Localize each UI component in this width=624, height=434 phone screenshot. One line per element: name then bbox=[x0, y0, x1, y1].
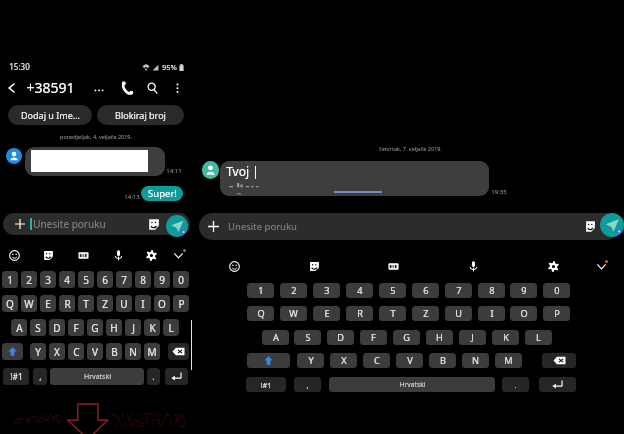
button[interactable]: 5 bbox=[379, 283, 406, 298]
button[interactable]: R bbox=[346, 306, 373, 321]
button[interactable]: tool0 bbox=[9, 250, 20, 261]
button[interactable]: C bbox=[68, 343, 84, 360]
button[interactable]: I bbox=[478, 306, 505, 321]
button[interactable]: Hrvatski bbox=[329, 377, 495, 392]
button[interactable]: H bbox=[426, 330, 453, 345]
button[interactable]: Enter bbox=[165, 368, 188, 385]
button[interactable]: 5 bbox=[78, 271, 94, 288]
button[interactable]: 6 bbox=[97, 271, 113, 288]
button[interactable]: E bbox=[40, 295, 56, 312]
button[interactable]: Search bbox=[144, 78, 161, 98]
button[interactable]: 4 bbox=[346, 283, 373, 298]
button[interactable]: Z bbox=[412, 306, 439, 321]
button[interactable]: Add attachment bbox=[207, 220, 220, 233]
button[interactable]: 2 bbox=[21, 271, 37, 288]
button[interactable]: Q bbox=[247, 306, 274, 321]
button[interactable]: Add attachment bbox=[14, 218, 26, 230]
button[interactable]: G bbox=[87, 319, 103, 336]
button[interactable]: B bbox=[106, 343, 122, 360]
button[interactable]: C bbox=[363, 353, 390, 368]
button[interactable]: , bbox=[294, 377, 321, 392]
button[interactable]: 6 bbox=[412, 283, 439, 298]
button[interactable]: N bbox=[125, 343, 141, 360]
button[interactable]: D bbox=[327, 330, 354, 345]
button[interactable]: !#1 bbox=[246, 377, 286, 392]
button[interactable]: G bbox=[393, 330, 420, 345]
button[interactable]: O bbox=[510, 306, 537, 321]
button[interactable]: Tvoj | bbox=[220, 161, 489, 196]
button[interactable]: W bbox=[280, 306, 307, 321]
button[interactable]: Y bbox=[297, 353, 324, 368]
button[interactable]: W bbox=[21, 295, 37, 312]
button[interactable]: 1 bbox=[2, 271, 18, 288]
button[interactable]: U bbox=[445, 306, 472, 321]
button[interactable]: 4 bbox=[59, 271, 75, 288]
button[interactable]: Shift bbox=[2, 343, 23, 360]
button[interactable]: 9 bbox=[510, 283, 537, 298]
button[interactable]: 7 bbox=[445, 283, 472, 298]
button[interactable]: 8 bbox=[135, 271, 151, 288]
button[interactable]: S bbox=[294, 330, 321, 345]
button[interactable]: Stickers bbox=[585, 220, 596, 233]
button[interactable]: J bbox=[459, 330, 486, 345]
button[interactable]: Stickers bbox=[148, 218, 160, 231]
button[interactable]: Backspace bbox=[542, 353, 576, 368]
button[interactable]: tool4 bbox=[146, 250, 157, 261]
button[interactable]: Shift bbox=[247, 353, 290, 368]
button[interactable]: K bbox=[144, 319, 160, 336]
button[interactable]: T bbox=[78, 295, 94, 312]
button[interactable]: . bbox=[502, 377, 529, 392]
button[interactable]: L bbox=[525, 330, 552, 345]
button[interactable]: rtool5 bbox=[596, 261, 607, 272]
button[interactable]: Enter bbox=[539, 377, 576, 392]
button[interactable]: 3 bbox=[313, 283, 340, 298]
button[interactable]: tool2 bbox=[78, 250, 89, 261]
button[interactable]: Send bbox=[166, 215, 188, 237]
button[interactable]: Y bbox=[30, 343, 46, 360]
button[interactable]: Z bbox=[97, 295, 113, 312]
button[interactable]: J bbox=[125, 319, 141, 336]
button[interactable]: 2 bbox=[280, 283, 307, 298]
button[interactable]: rtool1 bbox=[309, 261, 320, 272]
button[interactable]: Hrvatski bbox=[50, 368, 144, 385]
button[interactable]: H bbox=[106, 319, 122, 336]
button[interactable]: V bbox=[396, 353, 423, 368]
button[interactable]: R bbox=[59, 295, 75, 312]
button[interactable]: Q bbox=[2, 295, 18, 312]
button[interactable]: 0 bbox=[543, 283, 570, 298]
button[interactable]: M bbox=[144, 343, 160, 360]
button[interactable]: . bbox=[147, 368, 160, 385]
button[interactable]: Super! bbox=[141, 186, 183, 201]
button[interactable]: tool3 bbox=[113, 250, 124, 261]
button[interactable]: 7 bbox=[116, 271, 132, 288]
button[interactable]: rtool3 bbox=[468, 261, 479, 272]
button[interactable]: S bbox=[30, 319, 46, 336]
button[interactable]: M bbox=[495, 353, 522, 368]
button[interactable]: K bbox=[492, 330, 519, 345]
button[interactable]: A bbox=[11, 319, 27, 336]
button[interactable]: E bbox=[313, 306, 340, 321]
button[interactable]: N bbox=[462, 353, 489, 368]
button[interactable]: rtool0 bbox=[229, 261, 240, 272]
button[interactable]: 1 bbox=[247, 283, 274, 298]
button[interactable]: T bbox=[379, 306, 406, 321]
button[interactable]: 0 bbox=[173, 271, 189, 288]
button[interactable]: F bbox=[360, 330, 387, 345]
button[interactable]: tool5 bbox=[173, 250, 184, 261]
button[interactable]: Back bbox=[2, 78, 22, 98]
button[interactable]: P bbox=[543, 306, 570, 321]
button[interactable]: 9 bbox=[154, 271, 170, 288]
button[interactable]: D bbox=[49, 319, 65, 336]
button[interactable]: Backspace bbox=[168, 343, 189, 360]
button[interactable]: A bbox=[262, 330, 289, 345]
button[interactable]: Call bbox=[119, 78, 136, 98]
button[interactable]: B bbox=[429, 353, 456, 368]
button[interactable]: !#1 bbox=[3, 368, 29, 385]
button[interactable]: V bbox=[87, 343, 103, 360]
button[interactable]: X bbox=[330, 353, 357, 368]
button[interactable]: 8 bbox=[478, 283, 505, 298]
button[interactable]: F bbox=[68, 319, 84, 336]
button[interactable]: X bbox=[49, 343, 65, 360]
button[interactable]: tool1 bbox=[43, 250, 54, 261]
button[interactable]: I bbox=[135, 295, 151, 312]
